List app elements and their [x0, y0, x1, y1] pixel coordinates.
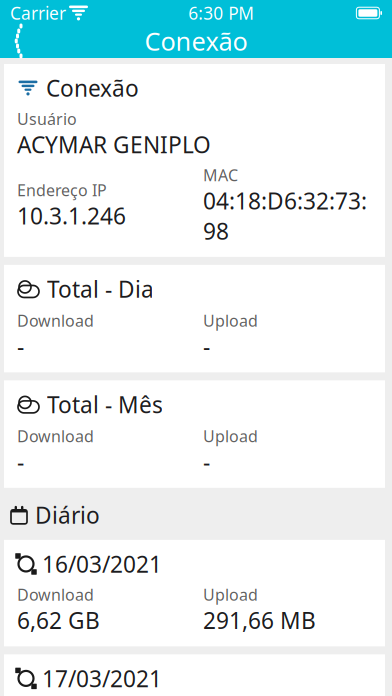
staticText: -: [203, 331, 210, 361]
staticText: ACYMAR GENIPLO: [17, 129, 211, 159]
staticText: Upload: [203, 584, 258, 605]
staticText: Diário: [35, 500, 100, 530]
staticText: Upload: [203, 425, 258, 447]
staticText: Endereço IP: [17, 179, 107, 201]
staticText: Conexão: [46, 73, 139, 103]
button[interactable]: Total - Mês: [0, 380, 392, 488]
staticText: Upload: [203, 310, 258, 331]
staticText: Usuário: [17, 108, 77, 129]
staticText: -: [17, 331, 24, 361]
button[interactable]: Total - Dia: [0, 265, 392, 372]
staticText: 291,66 MB: [203, 605, 316, 635]
staticText: Carrier: [10, 1, 66, 24]
button[interactable]: 17/03/2021: [0, 654, 392, 696]
staticText: Download: [17, 310, 94, 331]
staticText: 16/03/2021: [42, 549, 162, 579]
button[interactable]: Back: [0, 24, 32, 58]
staticText: 6:30 PM: [188, 1, 254, 24]
staticText: 04:18:D6:32:73:98: [203, 186, 367, 246]
staticText: 6,62 GB: [17, 605, 100, 635]
staticText: Download: [17, 425, 94, 447]
staticText: 10.3.1.246: [17, 201, 126, 231]
staticText: Download: [17, 584, 94, 605]
staticText: 17/03/2021: [42, 663, 162, 693]
staticText: MAC: [203, 164, 238, 186]
button[interactable]: 16/03/2021: [0, 540, 392, 646]
staticText: -: [17, 447, 24, 477]
staticText: Total - Mês: [47, 389, 163, 419]
staticText: Total - Dia: [47, 274, 154, 304]
staticText: -: [203, 447, 210, 477]
staticText: Conexão: [144, 24, 247, 58]
